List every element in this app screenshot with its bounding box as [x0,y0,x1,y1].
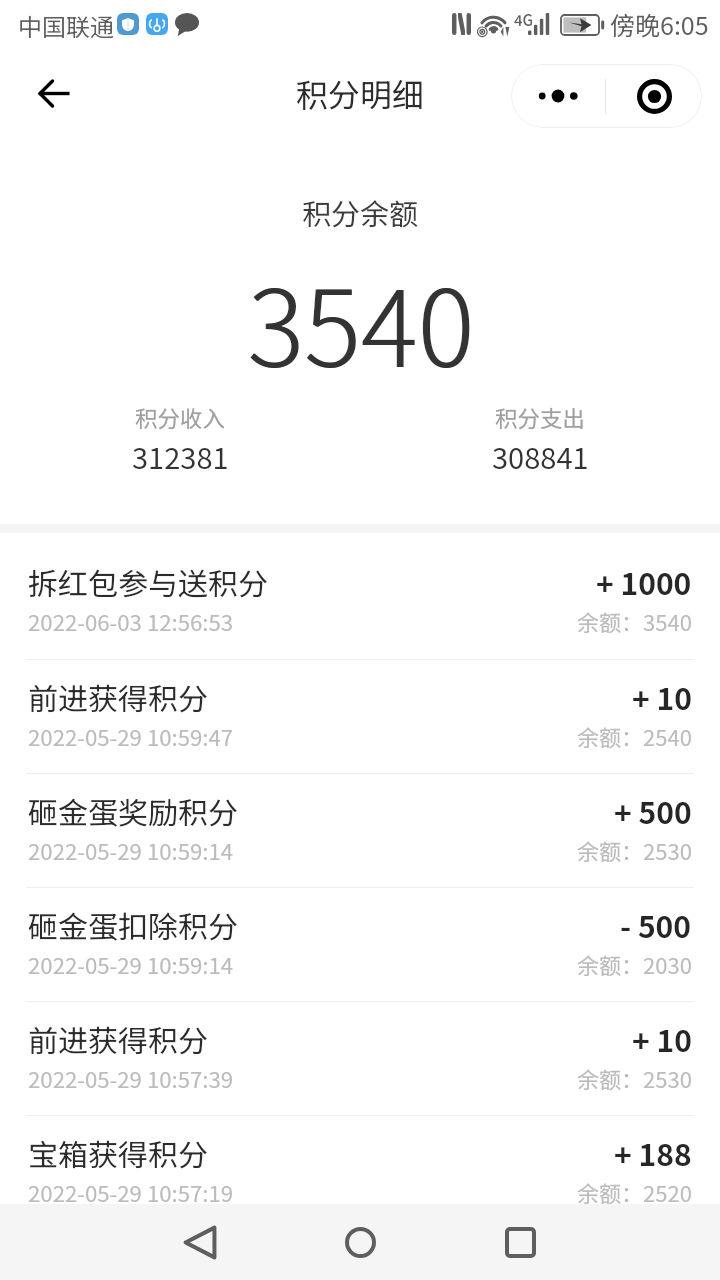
staticText: + 188 [614,1131,692,1174]
staticText: 3540 [247,244,474,397]
button[interactable]: Back [23,62,85,124]
button[interactable]: 前进获得积分 [0,659,720,773]
staticText: 拆红包参与送积分 [28,560,268,603]
staticText: 2022-06-03 12:56:53 [28,605,234,637]
staticText: 312381 [132,435,229,477]
staticText: + 10 [632,1017,692,1060]
staticText: 砸金蛋扣除积分 [28,903,238,946]
staticText: 积分明细 [296,70,425,116]
staticText: 余额：2520 [577,1176,692,1208]
button[interactable]: 宝箱获得积分 [0,1115,720,1229]
staticText: 余额：2030 [577,948,692,980]
staticText: 2022-05-29 10:57:39 [28,1062,234,1094]
button[interactable]: 砸金蛋奖励积分 [0,773,720,887]
staticText: 前进获得积分 [28,1017,208,1060]
button[interactable]: Back [160,1204,240,1280]
button[interactable]: Recent apps [480,1204,560,1280]
staticText: 2022-05-29 10:57:19 [28,1176,234,1208]
staticText: 积分余额 [302,191,419,233]
staticText: 傍晚6:05 [610,6,709,42]
staticText: 积分收入 [135,401,226,434]
button[interactable]: More options [511,64,605,128]
button[interactable]: Home [320,1204,400,1280]
staticText: 宝箱获得积分 [28,1131,208,1174]
button[interactable]: 砸金蛋扣除积分 [0,887,720,1001]
staticText: 余额：3540 [577,605,692,637]
staticText: 308841 [492,435,589,477]
staticText: 余额：2540 [577,720,692,752]
staticText: + 1000 [596,560,692,603]
staticText: 砸金蛋奖励积分 [28,789,238,832]
staticText: 2022-05-29 10:59:14 [28,948,234,980]
button[interactable]: 拆红包参与送积分 [0,533,720,659]
staticText: - 500 [620,903,692,946]
staticText: 4G [514,9,534,31]
staticText: 2022-05-29 10:59:14 [28,834,234,866]
staticText: 2022-05-29 10:59:47 [28,720,234,752]
staticText: 积分支出 [495,401,586,434]
staticText: + 10 [632,675,692,718]
staticText: 余额：2530 [577,1062,692,1094]
button[interactable]: 前进获得积分 [0,1001,720,1115]
staticText: 前进获得积分 [28,675,208,718]
staticText: + 500 [614,789,692,832]
button[interactable]: Close [606,64,702,128]
staticText: 3540 [248,244,475,397]
staticText: 余额：2530 [577,834,692,866]
staticText: 中国联通 [18,8,114,43]
